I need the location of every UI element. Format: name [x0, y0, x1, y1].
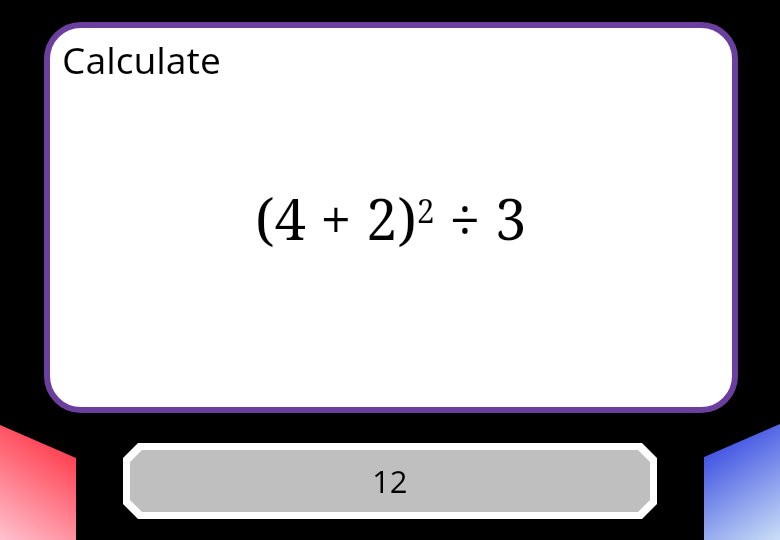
button[interactable]: Calculate [44, 22, 738, 413]
staticText: 12 [372, 460, 408, 502]
staticText: (4 + 2)2 ÷ 3 [255, 180, 527, 256]
staticText: Calculate [62, 34, 221, 84]
button[interactable]: Answer 12 [123, 443, 657, 519]
